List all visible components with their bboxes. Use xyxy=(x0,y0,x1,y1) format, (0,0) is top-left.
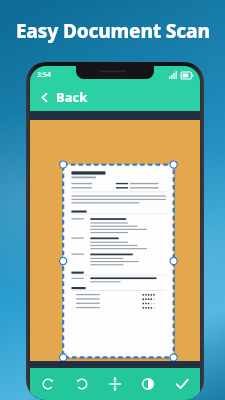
other: Back xyxy=(39,92,50,103)
button[interactable]: Adjust contrast xyxy=(133,368,163,400)
staticText: Easy Document Scan xyxy=(16,18,210,44)
button[interactable]: Rotate right xyxy=(67,368,97,400)
button[interactable]: Rotate left xyxy=(33,368,63,400)
button[interactable]: Done xyxy=(167,368,197,400)
button[interactable]: Flip vertical xyxy=(100,368,130,400)
staticText: Back xyxy=(56,88,88,106)
button[interactable]: Back xyxy=(30,83,200,111)
staticText: 3:54 xyxy=(37,70,51,80)
